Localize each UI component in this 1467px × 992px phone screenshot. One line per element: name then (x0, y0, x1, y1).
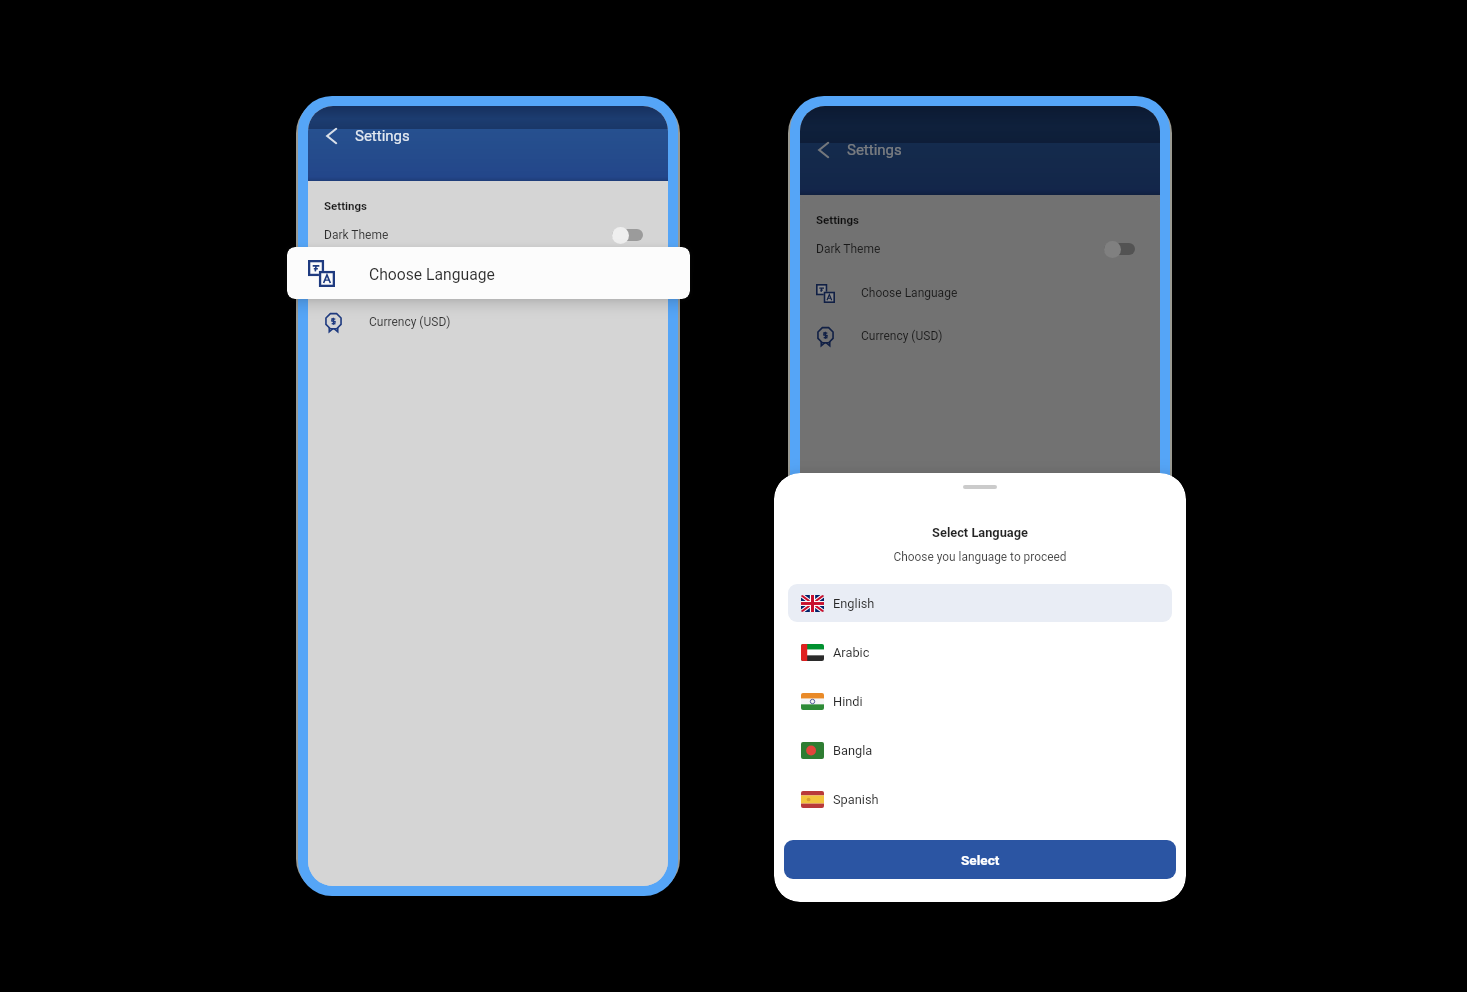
staticText: Settings (816, 213, 860, 226)
staticText: Hindi (833, 694, 863, 709)
staticText: English (833, 596, 875, 611)
staticText: Choose you language to proceed (774, 550, 1186, 564)
staticText: Settings (355, 127, 410, 145)
button[interactable]: Dark Theme (308, 223, 668, 247)
staticText: Choose Language (369, 265, 495, 283)
button[interactable]: Bangla (788, 731, 1172, 769)
staticText: Dark Theme (816, 242, 881, 256)
button[interactable]: Hindi (788, 682, 1172, 720)
button[interactable]: Select (784, 840, 1176, 879)
staticText: Currency (USD) (861, 329, 943, 343)
staticText: Arabic (833, 645, 870, 660)
staticText: Currency (USD) (369, 315, 451, 329)
staticText: Dark Theme (324, 228, 389, 242)
button[interactable]: Currency (USD) (308, 310, 668, 334)
button[interactable]: English (788, 584, 1172, 622)
button[interactable]: Arabic (788, 633, 1172, 671)
button[interactable]: Currency (USD) (800, 324, 1160, 348)
button[interactable]: Choose Language (800, 281, 1160, 305)
button[interactable]: Back (322, 124, 346, 148)
staticText: Spanish (833, 792, 879, 807)
staticText: Choose Language (369, 272, 466, 286)
staticText: Settings (324, 199, 368, 212)
button[interactable]: Spanish (788, 780, 1172, 818)
staticText: Select (961, 852, 1000, 868)
staticText: Select Language (774, 525, 1186, 540)
button[interactable]: Dark Theme (800, 237, 1160, 261)
button[interactable]: Back (814, 138, 838, 162)
button[interactable]: Choose Language (308, 267, 668, 291)
button[interactable]: Choose Language (287, 247, 690, 299)
staticText: Settings (847, 141, 902, 159)
staticText: Choose Language (861, 286, 958, 300)
staticText: Bangla (833, 743, 873, 758)
